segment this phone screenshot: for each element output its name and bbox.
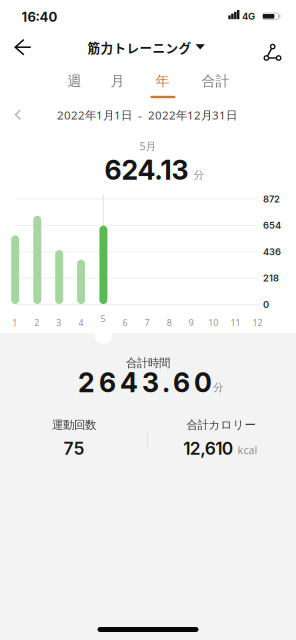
staticText: 年 bbox=[155, 72, 169, 90]
staticText: 16:40 bbox=[21, 9, 57, 25]
staticText: 12 bbox=[252, 316, 262, 328]
staticText: 9 bbox=[189, 316, 194, 328]
staticText: 0 bbox=[263, 299, 269, 310]
button[interactable]: 筋力トレーニング bbox=[87, 38, 205, 56]
staticText: 5 bbox=[100, 312, 105, 324]
button[interactable]: 年 bbox=[142, 69, 182, 93]
button[interactable]: 3月 bbox=[55, 250, 63, 304]
button[interactable]: Back bbox=[9, 33, 37, 61]
staticText: 10 bbox=[208, 316, 218, 328]
staticText: 4G bbox=[242, 10, 255, 22]
staticText: 2 bbox=[34, 316, 39, 328]
staticText: 11 bbox=[230, 316, 240, 328]
staticText: 75 bbox=[63, 438, 84, 459]
staticText: 624.13 bbox=[104, 154, 188, 186]
button[interactable]: 月 bbox=[97, 69, 137, 93]
staticText: 872 bbox=[263, 193, 280, 205]
button[interactable]: 週 bbox=[54, 69, 94, 93]
staticText: 分 bbox=[213, 381, 224, 394]
button[interactable]: 4月 bbox=[77, 260, 85, 304]
staticText: 合計カロリー bbox=[186, 418, 255, 432]
staticText: 12,610 bbox=[183, 438, 233, 459]
staticText: 5月 bbox=[139, 139, 156, 153]
staticText: 3 bbox=[56, 316, 61, 328]
staticText: 436 bbox=[263, 246, 281, 257]
button[interactable]: 2月 bbox=[33, 216, 41, 304]
staticText: 218 bbox=[263, 273, 279, 284]
button[interactable]: 合計 bbox=[191, 69, 239, 93]
staticText: 2643.60 bbox=[78, 366, 212, 399]
staticText: 筋力トレーニング bbox=[87, 38, 191, 56]
staticText: 1 bbox=[12, 316, 17, 328]
staticText: 週 bbox=[67, 72, 81, 90]
button[interactable]: Previous year bbox=[6, 103, 30, 127]
staticText: 7 bbox=[145, 316, 150, 328]
button[interactable]: 1月 bbox=[11, 235, 19, 304]
staticText: 合計 bbox=[201, 72, 229, 90]
staticText: 2022年1月1日 - 2022年12月31日 bbox=[57, 107, 237, 123]
staticText: 8 bbox=[167, 316, 172, 328]
staticText: 6 bbox=[122, 316, 127, 328]
button[interactable]: Share bbox=[258, 37, 286, 65]
staticText: 運動回数 bbox=[52, 418, 96, 432]
staticText: kcal bbox=[237, 443, 257, 457]
button[interactable]: 5月 bbox=[99, 226, 107, 304]
staticText: 4 bbox=[78, 316, 83, 328]
button[interactable]: 2022年1月1日 - 2022年12月31日 bbox=[57, 107, 237, 123]
staticText: 月 bbox=[110, 72, 124, 90]
staticText: 分 bbox=[193, 168, 204, 182]
staticText: 合計時間 bbox=[126, 356, 170, 370]
staticText: 654 bbox=[263, 220, 281, 231]
